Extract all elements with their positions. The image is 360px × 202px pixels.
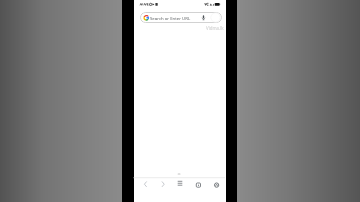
staticText: Vidma.lk	[206, 25, 224, 31]
button[interactable]	[174, 179, 186, 191]
button[interactable]: Search or Enter URL	[140, 12, 222, 23]
button[interactable]	[140, 179, 152, 191]
button[interactable]	[192, 179, 204, 191]
button[interactable]	[157, 179, 169, 191]
staticText: Search or Enter URL	[150, 15, 191, 21]
button[interactable]	[211, 179, 223, 191]
